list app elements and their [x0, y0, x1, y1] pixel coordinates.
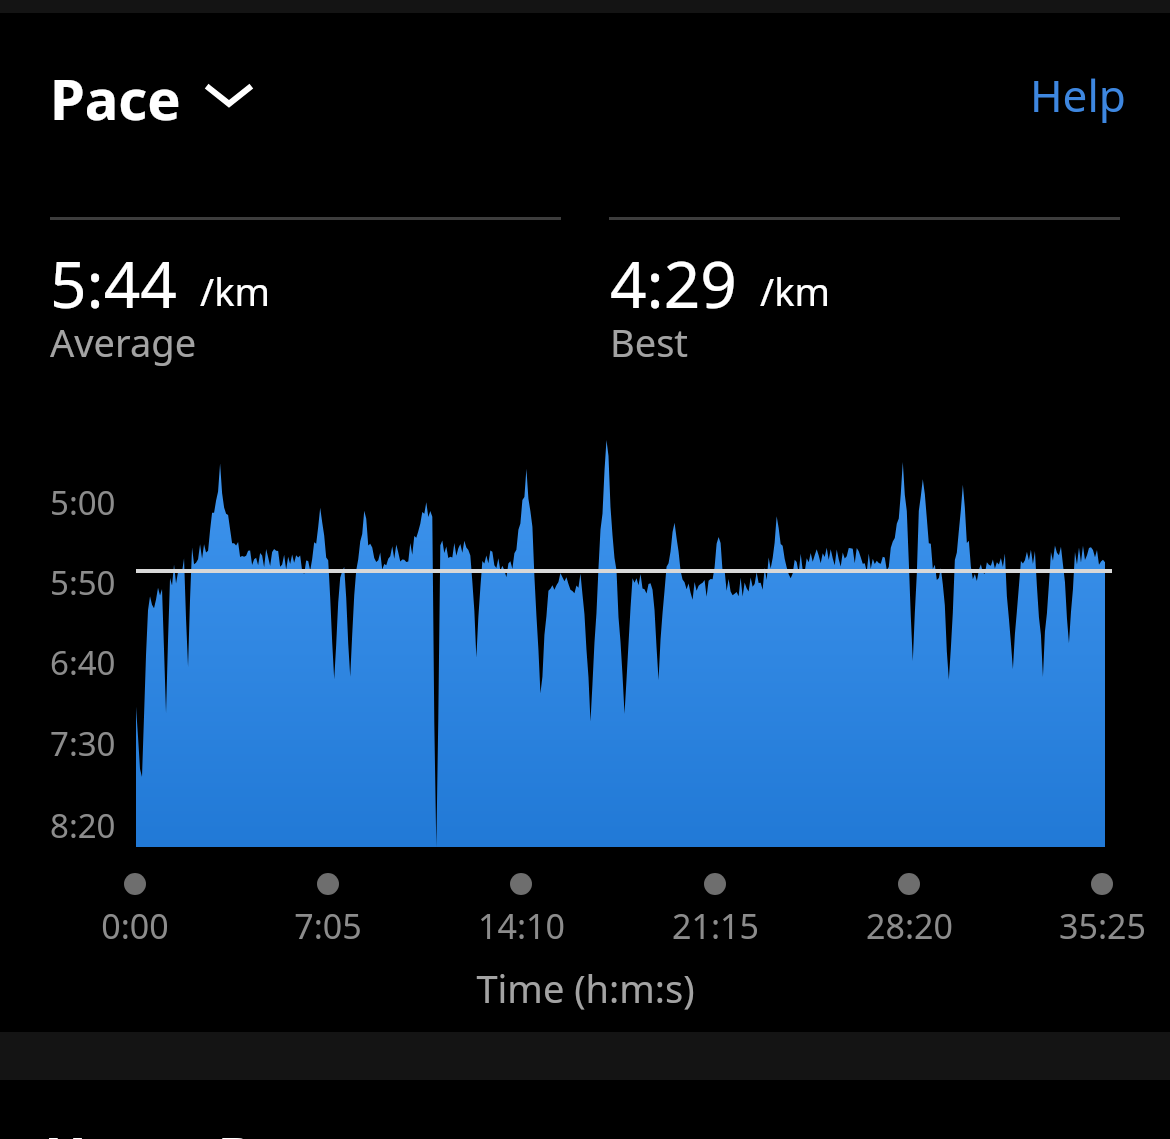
staticText: 4:29: [610, 240, 737, 327]
button[interactable]: Heart Rate: [44, 1118, 444, 1139]
staticText: 6:40: [50, 640, 116, 682]
staticText: 5:50: [50, 560, 116, 602]
button[interactable]: Pace: [44, 58, 259, 132]
staticText: /km: [200, 265, 270, 317]
button[interactable]: 4:29: [608, 240, 1108, 365]
button[interactable]: 5:44: [48, 240, 548, 365]
staticText: 35:25: [1059, 903, 1146, 945]
staticText: 0:00: [101, 903, 169, 945]
staticText: 28:20: [866, 903, 953, 945]
staticText: Heart Rate: [44, 1118, 346, 1139]
staticText: Pace: [50, 60, 181, 134]
staticText: Help: [1030, 65, 1126, 125]
staticText: 5:00: [50, 480, 116, 522]
staticText: 8:20: [50, 803, 116, 845]
staticText: 5:44: [50, 240, 177, 327]
button[interactable]: Help: [1018, 58, 1126, 132]
staticText: 21:15: [672, 903, 759, 945]
staticText: Average: [50, 316, 197, 368]
staticText: 14:10: [478, 903, 565, 945]
staticText: Time (h:m:s): [476, 962, 695, 1010]
staticText: 7:05: [294, 903, 362, 945]
staticText: 7:30: [50, 721, 116, 763]
staticText: Best: [610, 316, 689, 368]
staticText: /km: [760, 265, 830, 317]
